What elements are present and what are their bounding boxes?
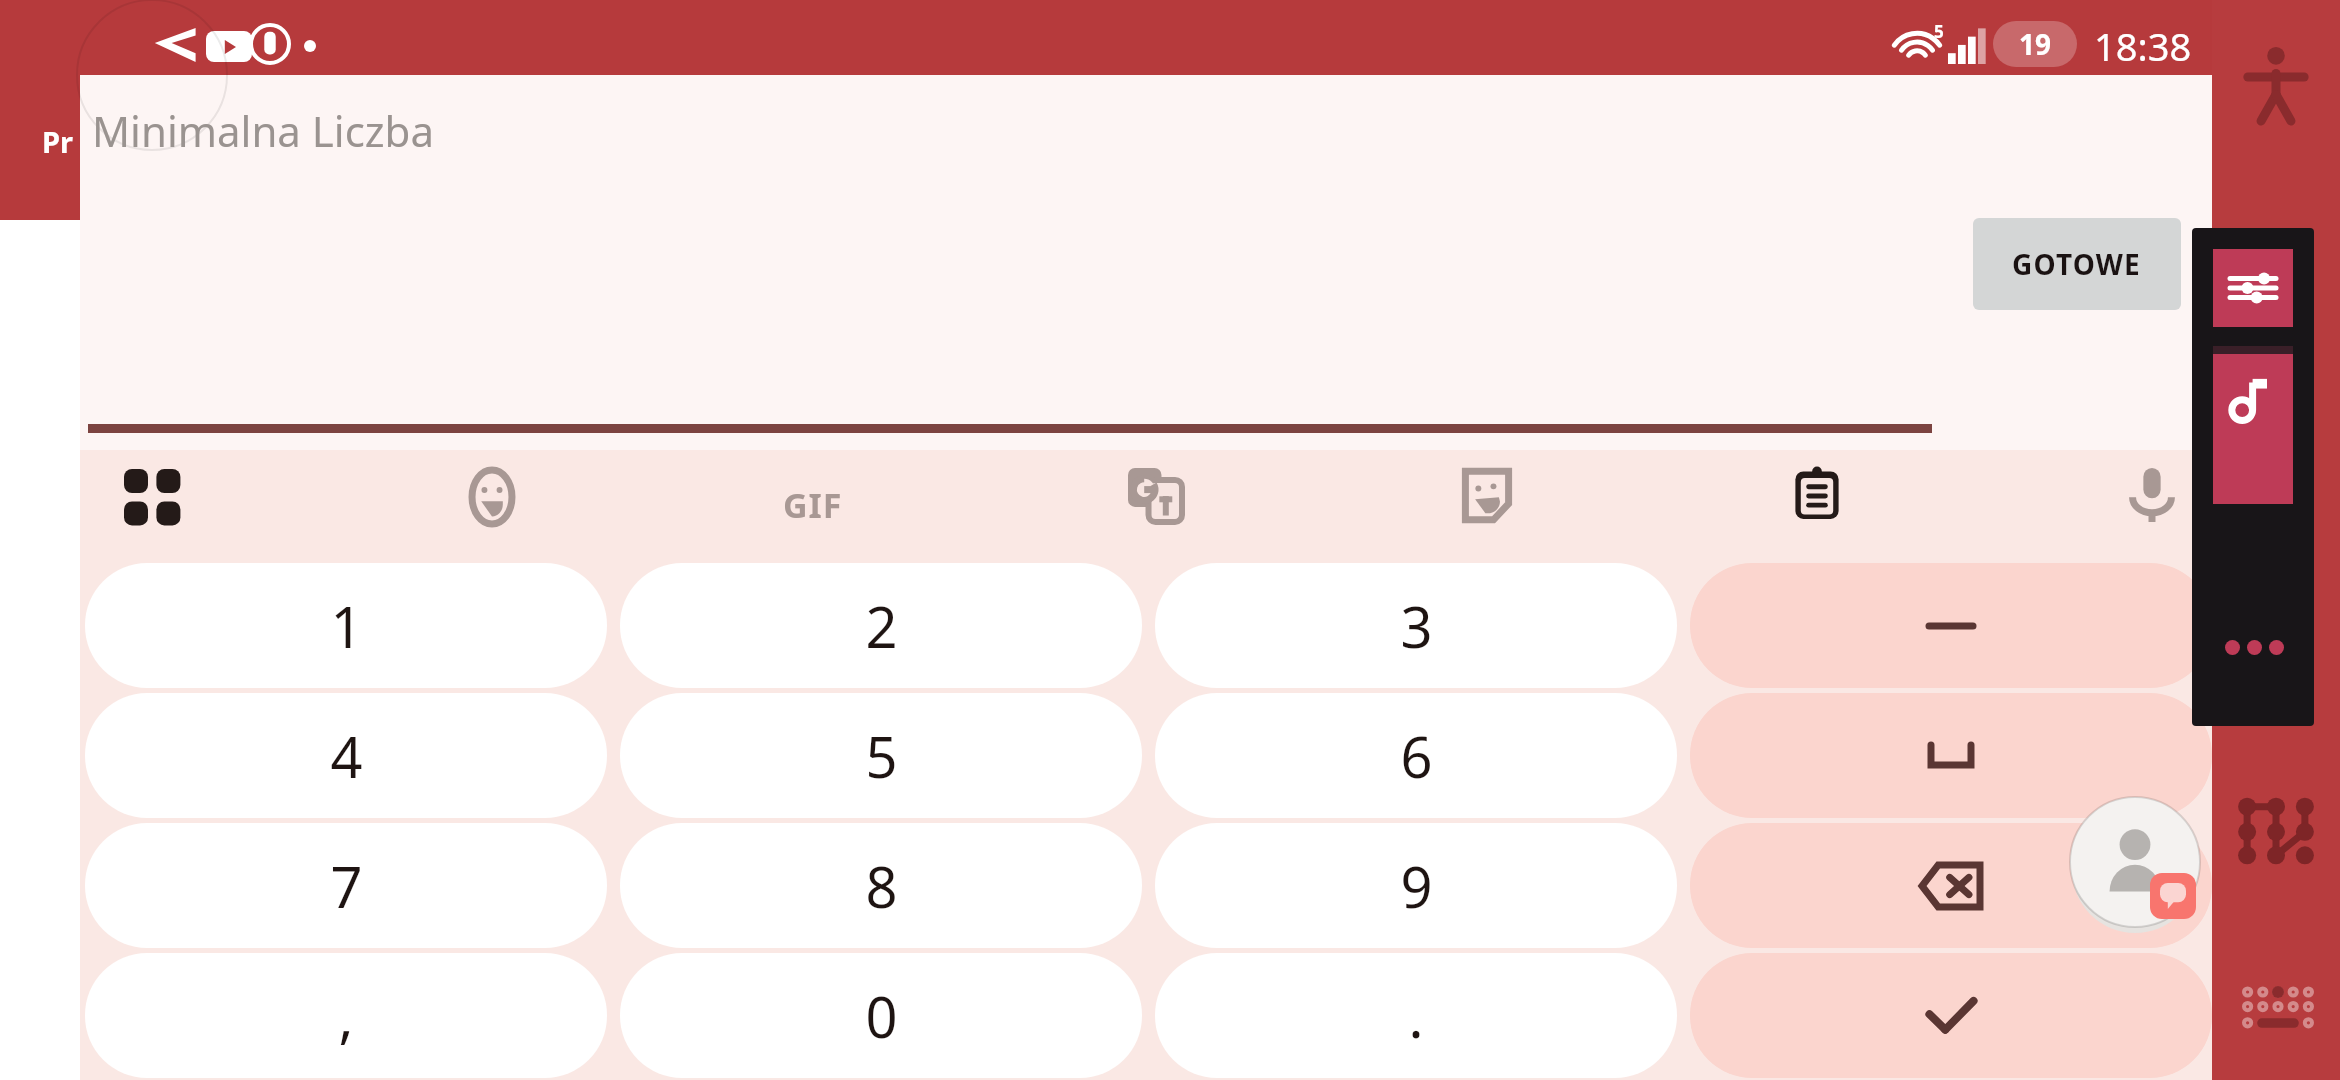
button[interactable]: 4 (85, 693, 607, 818)
button[interactable]: space (1690, 693, 2212, 818)
button[interactable]: 9 (1155, 823, 1677, 948)
button[interactable]: 1 (85, 563, 607, 688)
button[interactable]: Accessibility (2232, 40, 2320, 128)
button[interactable]: 8 (620, 823, 1142, 948)
button[interactable]: minus (1690, 563, 2212, 688)
button[interactable]: 2 (620, 563, 1142, 688)
button[interactable]: Clipboard (1790, 466, 1844, 520)
staticText: GOTOWE (2012, 245, 2142, 283)
staticText: 8 (865, 848, 898, 924)
staticText: GIF (783, 482, 843, 528)
staticText: 6 (1400, 718, 1433, 794)
staticText: 5 (1934, 20, 1944, 43)
button[interactable]: 5 (620, 693, 1142, 818)
staticText: 4 (330, 718, 363, 794)
staticText: , (338, 978, 354, 1054)
button[interactable]: Stickers (1460, 468, 1514, 522)
button[interactable]: Pattern (2238, 790, 2314, 866)
button[interactable]: 0 (620, 953, 1142, 1078)
button[interactable]: check (1690, 953, 2212, 1078)
button[interactable]: 6 (1155, 693, 1677, 818)
button[interactable]: GOTOWE (1973, 218, 2181, 310)
staticText: 3 (1400, 588, 1433, 664)
staticText: 7 (330, 848, 363, 924)
button[interactable]: Keyboard options (124, 469, 184, 529)
button[interactable]: del (1690, 823, 2212, 948)
staticText: 19 (2019, 25, 2052, 63)
button[interactable]: 7 (85, 823, 607, 948)
staticText: . (1408, 978, 1424, 1054)
button[interactable]: More options (2225, 640, 2284, 655)
button[interactable]: . (1155, 953, 1677, 1078)
button[interactable]: Voice input (2125, 468, 2179, 522)
staticText: 5 (865, 718, 898, 794)
staticText: 18:38 (2094, 20, 2192, 72)
staticText: 2 (865, 588, 898, 664)
button[interactable]: Equalizer (2213, 249, 2293, 327)
staticText: 1 (330, 588, 363, 664)
button[interactable]: Keyboard (2238, 978, 2318, 1034)
button[interactable]: , (85, 953, 607, 1078)
button[interactable]: 3 (1155, 563, 1677, 688)
staticText: 9 (1400, 848, 1433, 924)
button[interactable]: Translate (1128, 468, 1182, 522)
button[interactable]: Music (2213, 354, 2293, 504)
staticText: 0 (865, 978, 898, 1054)
staticText: Pr (42, 122, 73, 161)
button[interactable]: Message (2150, 873, 2196, 919)
staticText: Minimalna Liczba (92, 102, 434, 159)
button[interactable]: Emoji (465, 470, 519, 524)
